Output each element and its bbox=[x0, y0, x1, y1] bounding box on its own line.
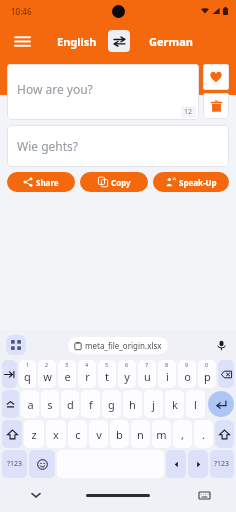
button[interactable]: f bbox=[81, 390, 100, 418]
button[interactable]: meta_file_origin.xlsx bbox=[68, 337, 168, 354]
button[interactable]: z bbox=[24, 420, 44, 448]
button[interactable]: Hide keyboard bbox=[26, 485, 46, 505]
staticText: 8 bbox=[165, 361, 169, 368]
staticText: Copy bbox=[111, 177, 131, 188]
button[interactable]: 1 bbox=[19, 360, 36, 388]
button[interactable]: Menu bbox=[10, 29, 34, 53]
button[interactable]: k bbox=[165, 390, 184, 418]
button[interactable]: Caps lock bbox=[2, 390, 19, 418]
button[interactable]: m bbox=[152, 420, 171, 448]
staticText: 0 bbox=[205, 361, 209, 368]
staticText: 3 bbox=[65, 361, 69, 368]
button[interactable]: Voice input bbox=[212, 336, 230, 354]
staticText: w bbox=[43, 369, 52, 384]
button[interactable]: 5 bbox=[98, 360, 116, 388]
staticText: 10:46 bbox=[11, 6, 32, 17]
staticText: 6 bbox=[125, 361, 129, 368]
staticText: l bbox=[194, 397, 197, 412]
staticText: Share bbox=[36, 177, 59, 188]
staticText: g bbox=[108, 397, 115, 412]
button[interactable]: Right bbox=[188, 450, 208, 478]
staticText: h bbox=[129, 397, 136, 412]
staticText: Wie gehts? bbox=[17, 138, 78, 154]
button[interactable]: Favorite bbox=[203, 64, 229, 90]
staticText: 1 bbox=[26, 361, 30, 368]
button[interactable]: 9 bbox=[178, 360, 196, 388]
staticText: s bbox=[47, 397, 53, 412]
staticText: 9 bbox=[185, 361, 189, 368]
button[interactable]: 0 bbox=[198, 360, 216, 388]
staticText: j bbox=[152, 397, 155, 412]
staticText: v bbox=[96, 427, 102, 442]
staticText: r bbox=[85, 369, 90, 384]
button[interactable]: c bbox=[68, 420, 87, 448]
button[interactable]: Enter bbox=[208, 391, 234, 417]
button[interactable]: 3 bbox=[58, 360, 76, 388]
button[interactable]: Emoji bbox=[29, 450, 55, 478]
button[interactable]: d bbox=[61, 390, 79, 418]
button[interactable]: ?123 bbox=[2, 450, 27, 478]
button[interactable]: n bbox=[131, 420, 150, 448]
button[interactable]: 7 bbox=[138, 360, 156, 388]
staticText: b bbox=[116, 427, 123, 442]
button[interactable]: ?123 bbox=[210, 450, 234, 478]
staticText: , bbox=[181, 427, 184, 442]
staticText: Speak-Up bbox=[179, 177, 217, 188]
button[interactable]: b bbox=[110, 420, 129, 448]
staticText: m bbox=[156, 427, 167, 442]
staticText: k bbox=[172, 397, 178, 412]
button[interactable]: Tab bbox=[2, 360, 17, 388]
button[interactable]: How are you? bbox=[7, 64, 199, 120]
button[interactable]: , bbox=[173, 420, 192, 448]
button[interactable]: Copy bbox=[80, 172, 148, 192]
button[interactable]: Switch keyboard bbox=[194, 485, 214, 505]
button[interactable]: a bbox=[21, 390, 39, 418]
button[interactable]: Delete bbox=[203, 93, 229, 119]
button[interactable]: h bbox=[123, 390, 142, 418]
button[interactable]: English bbox=[46, 34, 108, 49]
staticText: meta_file_origin.xlsx bbox=[85, 340, 162, 351]
button[interactable]: 6 bbox=[118, 360, 136, 388]
button[interactable]: Shift bbox=[2, 420, 22, 448]
button[interactable]: Toolbar bbox=[6, 335, 26, 355]
staticText: f bbox=[89, 397, 93, 412]
staticText: ?123 bbox=[7, 459, 23, 469]
button[interactable]: Wie gehts? bbox=[7, 125, 229, 167]
button[interactable]: . bbox=[194, 420, 213, 448]
staticText: 7 bbox=[145, 361, 149, 368]
staticText: y bbox=[124, 369, 130, 384]
staticText: a bbox=[27, 397, 34, 412]
button[interactable]: Backspace bbox=[218, 360, 234, 388]
staticText: 5 bbox=[105, 361, 109, 368]
staticText: n bbox=[137, 427, 144, 442]
staticText: 12 bbox=[184, 107, 193, 117]
staticText: 2 bbox=[45, 361, 49, 368]
button[interactable]: 2 bbox=[38, 360, 56, 388]
staticText: e bbox=[64, 369, 71, 384]
button[interactable]: Shift bbox=[215, 420, 234, 448]
button[interactable]: 8 bbox=[158, 360, 176, 388]
button[interactable]: v bbox=[89, 420, 108, 448]
button[interactable]: Left bbox=[166, 450, 186, 478]
button[interactable]: Speak-Up bbox=[153, 172, 229, 192]
button[interactable]: l bbox=[186, 390, 205, 418]
button[interactable]: 4 bbox=[78, 360, 96, 388]
staticText: u bbox=[144, 369, 151, 384]
button[interactable]: German bbox=[140, 34, 202, 49]
staticText: English bbox=[57, 34, 97, 49]
button[interactable]: Swap languages bbox=[108, 30, 130, 52]
button[interactable]: g bbox=[102, 390, 121, 418]
staticText: . bbox=[202, 427, 205, 442]
button[interactable]: Share bbox=[7, 172, 75, 192]
button[interactable]: s bbox=[41, 390, 59, 418]
staticText: d bbox=[67, 397, 74, 412]
button[interactable]: j bbox=[144, 390, 163, 418]
staticText: z bbox=[31, 427, 37, 442]
staticText: x bbox=[53, 427, 59, 442]
button[interactable]: x bbox=[46, 420, 66, 448]
staticText: 4 bbox=[85, 361, 89, 368]
staticText: c bbox=[75, 427, 81, 442]
staticText: o bbox=[184, 369, 191, 384]
staticText: t bbox=[105, 369, 109, 384]
